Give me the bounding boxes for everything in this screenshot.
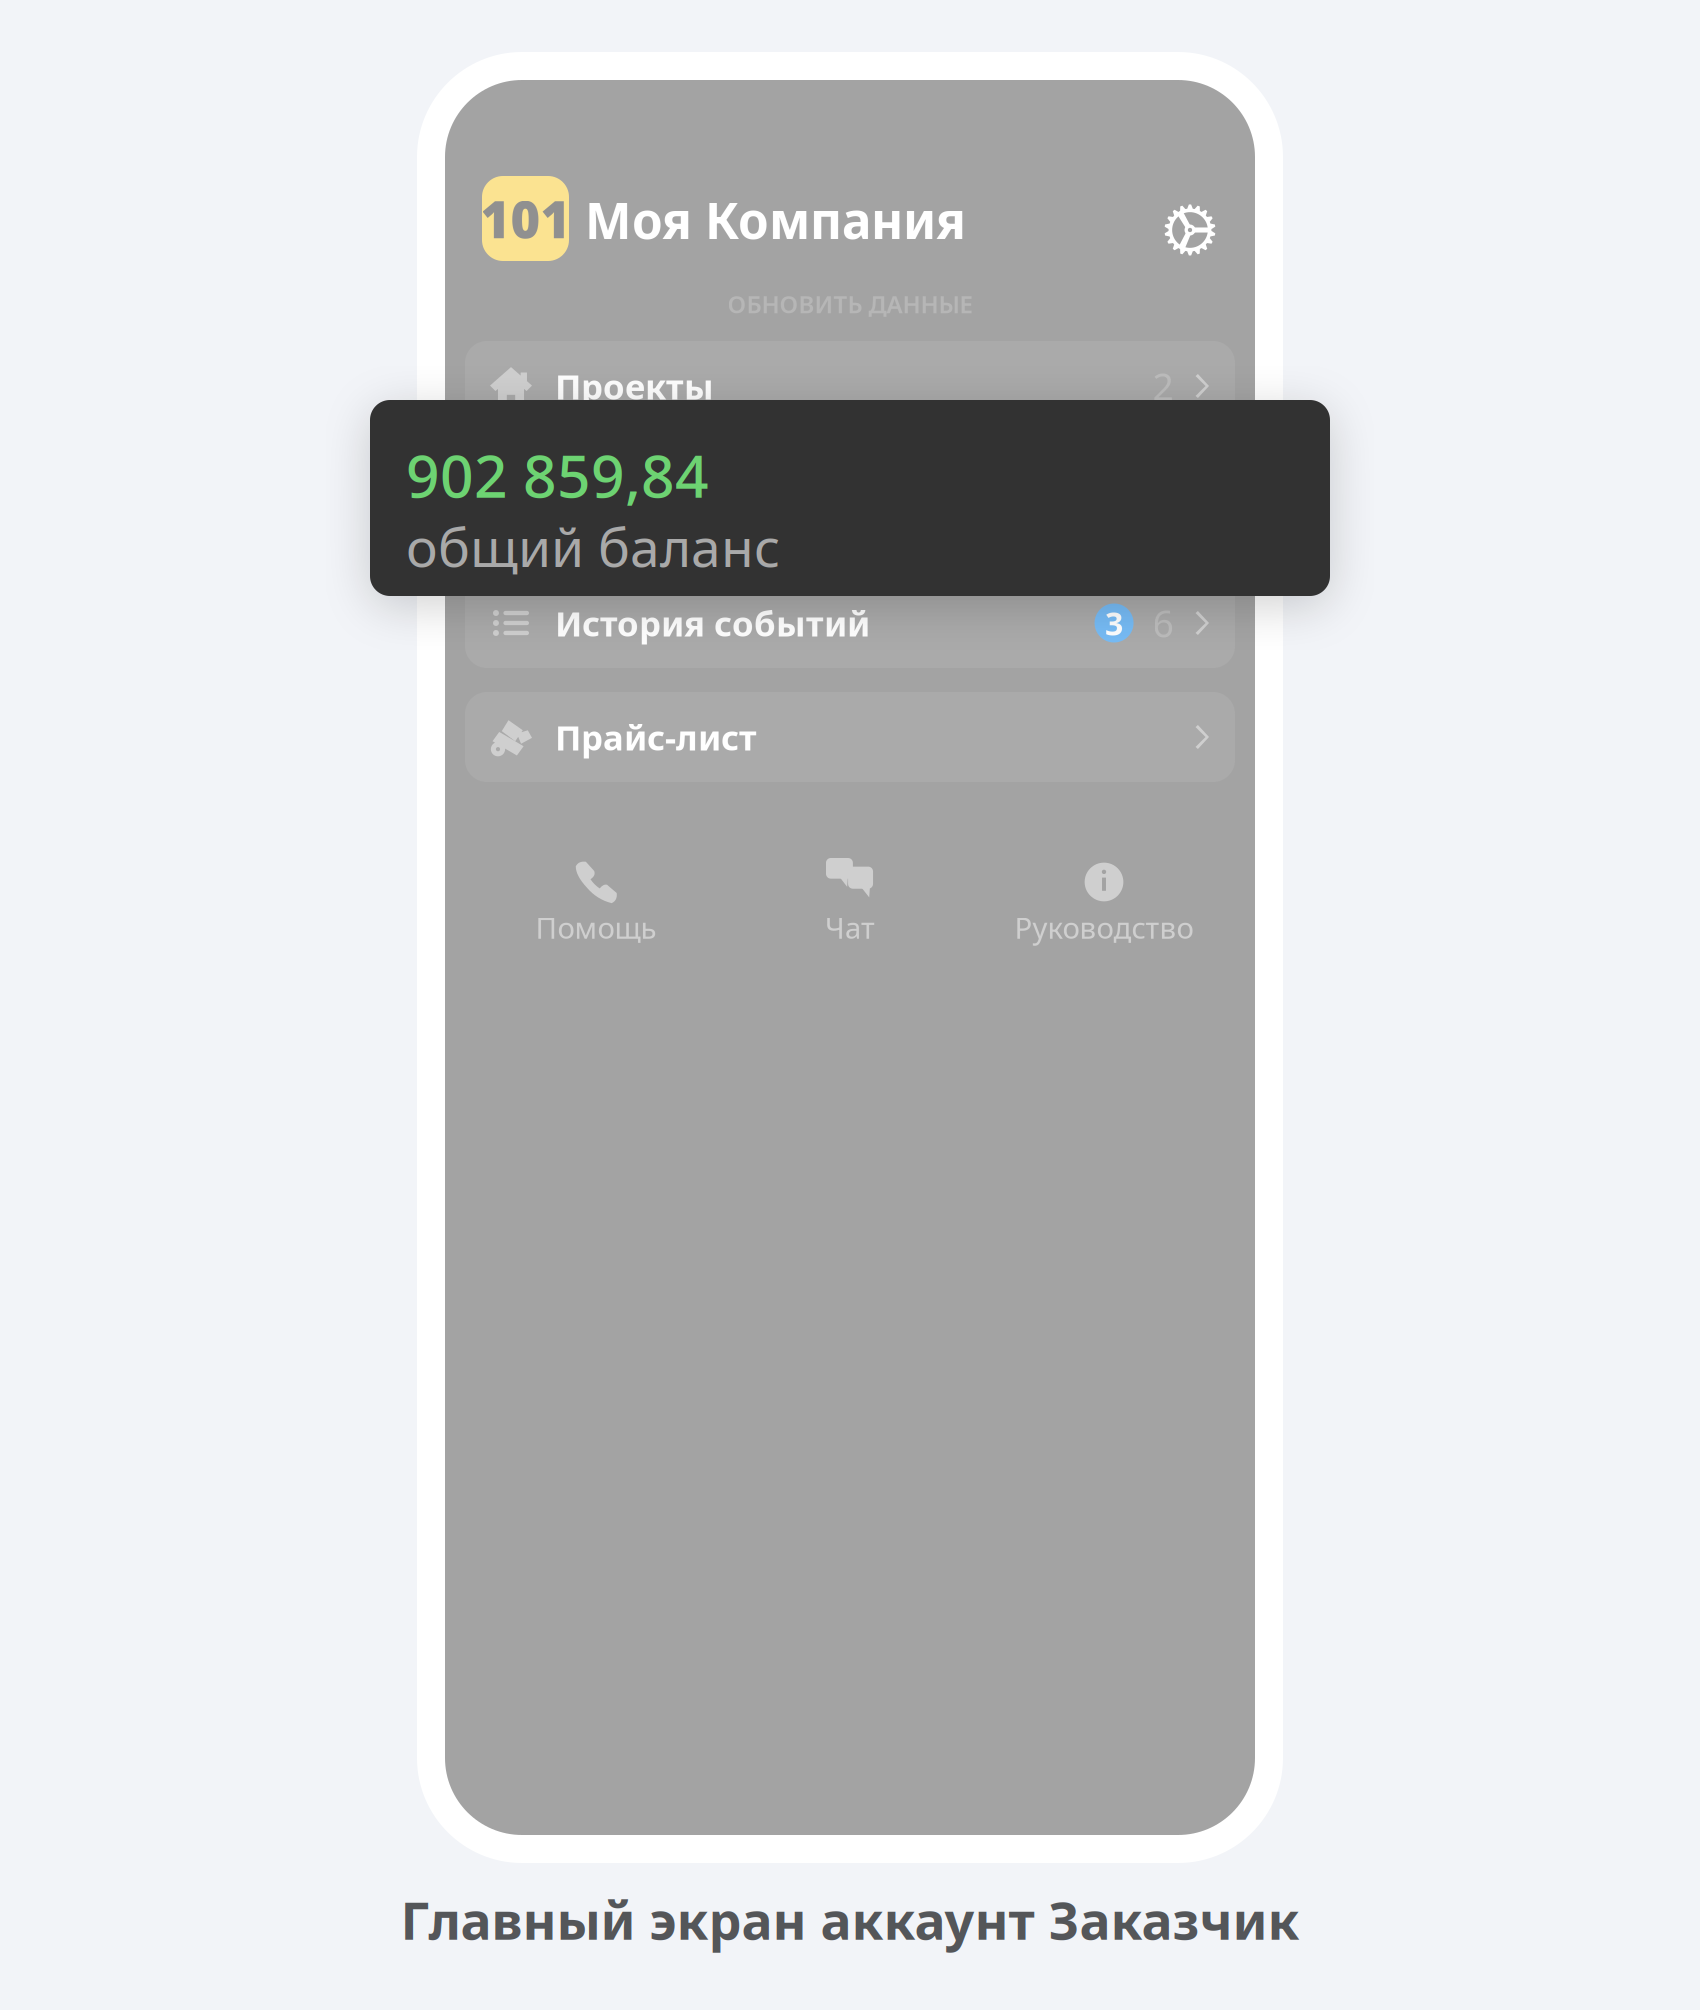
staticText: Главный экран аккаунт Заказчик xyxy=(400,1885,1299,1954)
button[interactable]: Прайс-лист xyxy=(465,692,1235,782)
button[interactable]: Документы xyxy=(465,505,1235,578)
button[interactable]: Помощь xyxy=(469,859,723,947)
staticText: 101 xyxy=(480,185,570,252)
button[interactable]: История событий xyxy=(465,578,1235,668)
button[interactable]: Руководство xyxy=(977,859,1231,947)
button[interactable]: ОБНОВИТЬ ДАННЫЕ xyxy=(445,281,1255,327)
staticText: Прайс-лист xyxy=(555,714,757,760)
button[interactable]: Settings xyxy=(1157,197,1223,263)
staticText: Счета xyxy=(555,445,658,491)
staticText: 2 xyxy=(1153,361,1174,411)
button[interactable]: Чат xyxy=(723,859,977,947)
button[interactable]: Company logo xyxy=(482,176,569,261)
staticText: 902 859,84 xyxy=(406,436,709,514)
staticText: общий баланс xyxy=(406,511,780,582)
staticText: Руководство xyxy=(1014,908,1193,947)
staticText: Документы xyxy=(555,518,765,564)
button[interactable]: Счета xyxy=(465,431,1235,505)
staticText: 3 xyxy=(1105,602,1123,644)
staticText: 6 xyxy=(1153,598,1174,648)
staticText: Моя Компания xyxy=(585,187,966,252)
staticText: ОБНОВИТЬ ДАННЫЕ xyxy=(727,288,972,320)
staticText: История событий xyxy=(555,600,870,646)
staticText: Чат xyxy=(825,908,875,947)
button[interactable]: Проекты xyxy=(465,341,1235,431)
staticText: Помощь xyxy=(535,908,656,947)
staticText: Проекты xyxy=(555,363,714,409)
